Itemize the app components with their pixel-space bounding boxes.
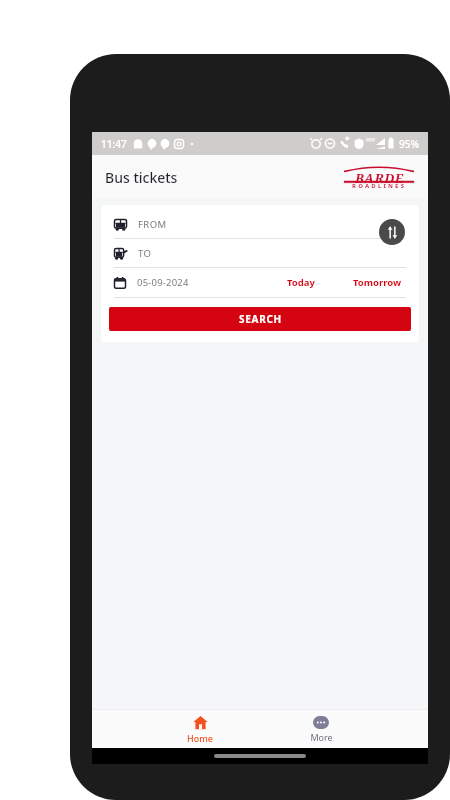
staticText: 05-09-2024: [137, 276, 189, 289]
button[interactable]: SEARCH: [109, 307, 411, 331]
staticText: TO: [138, 247, 152, 260]
staticText: ROADLINES: [352, 182, 407, 190]
staticText: More: [310, 731, 333, 743]
staticText: FROM: [138, 218, 167, 231]
button[interactable]: FROM: [106, 210, 414, 238]
button[interactable]: 05-09-2024: [114, 276, 189, 289]
staticText: 95%: [399, 137, 419, 151]
staticText: BARDE: [355, 169, 404, 187]
button[interactable]: Today: [287, 276, 315, 289]
staticText: 11:47: [101, 137, 127, 151]
button[interactable]: Home: [157, 710, 243, 748]
staticText: SEARCH: [239, 312, 282, 326]
button[interactable]: Tomorrow: [353, 276, 402, 289]
button[interactable]: Swap from and to: [379, 219, 405, 245]
button[interactable]: TO: [106, 239, 414, 267]
button[interactable]: More: [278, 710, 364, 748]
staticText: Bus tickets: [105, 168, 178, 187]
staticText: Home: [187, 732, 213, 744]
